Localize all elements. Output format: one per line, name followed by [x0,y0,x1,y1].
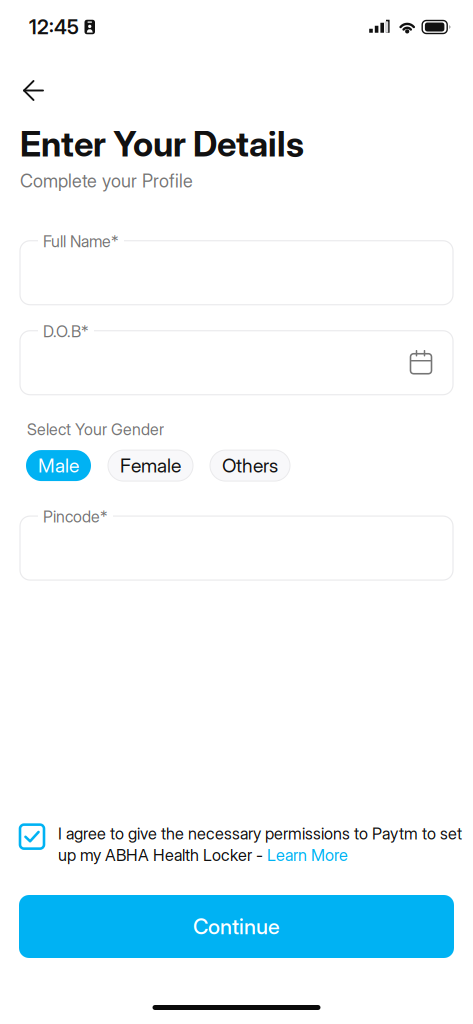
staticText: 12:45 [29,15,79,39]
button[interactable]: Male [26,450,91,481]
staticText: Enter Your Details [20,123,304,165]
staticText: up my ABHA Health Locker - [58,845,267,865]
staticText: Male [38,454,79,477]
button[interactable]: Female [108,450,193,481]
button[interactable]: Learn More [267,845,348,865]
staticText: Complete your Profile [20,170,193,192]
staticText: Female [120,454,181,477]
staticText: Continue [193,914,280,939]
staticText: Full Name* [43,232,119,251]
staticText: Others [222,454,278,477]
staticText: Select Your Gender [27,420,164,439]
staticText: I agree to give the necessary permission… [58,824,462,843]
staticText: Learn More [267,845,348,865]
button[interactable]: Back [13,70,54,111]
staticText: D.O.B* [43,322,89,341]
button[interactable]: Continue [19,895,454,958]
button[interactable]: Others [210,450,290,481]
staticText: Pincode* [43,507,108,526]
button[interactable]: I agree [19,824,45,850]
